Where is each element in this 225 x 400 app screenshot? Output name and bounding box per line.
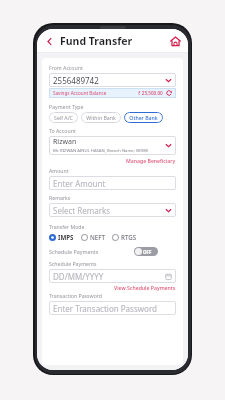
button[interactable]: Schedule Payments off: [134, 247, 158, 256]
staticText: Manage Beneficiary: [126, 157, 176, 164]
button[interactable]: Rizwan: [49, 136, 176, 155]
staticText: Savings Account Balance: [53, 90, 107, 96]
staticText: Other Bank: [129, 114, 158, 121]
staticText: Schedule Payments: [49, 260, 97, 267]
staticText: IMPS: [58, 233, 74, 241]
staticText: Fund Transfer: [60, 34, 133, 48]
button[interactable]: 2556489742: [49, 73, 176, 87]
button[interactable]: View Schedule Payments: [114, 284, 176, 291]
button[interactable]: Refresh balance: [166, 90, 172, 96]
staticText: ₹ 25,500.00: [138, 90, 163, 96]
button[interactable]: Other Bank: [124, 112, 163, 123]
staticText: Self A/C: [54, 114, 73, 121]
button[interactable]: Self A/C: [49, 112, 78, 123]
button[interactable]: Enter Amount: [49, 176, 176, 190]
staticText: Transfer Mode: [49, 223, 85, 230]
staticText: Within Bank: [86, 114, 116, 121]
staticText: Schedule Payments: [49, 248, 99, 255]
staticText: Remarks: [49, 194, 71, 201]
staticText: Mr. RIZWAN AINUL HASAN, Branch Name: 089…: [53, 148, 148, 154]
staticText: To Account: [49, 127, 76, 134]
button[interactable]: Home: [167, 33, 183, 49]
staticText: DD/MM/YYYY: [53, 271, 104, 282]
staticText: Select Remarks: [53, 205, 111, 216]
staticText: Transaction Password: [49, 292, 103, 299]
staticText: View Schedule Payments: [114, 284, 176, 291]
button[interactable]: DD/MM/YYYY: [49, 269, 176, 283]
staticText: RTGS: [121, 233, 137, 241]
staticText: NEFT: [90, 233, 105, 241]
button[interactable]: IMPS: [49, 233, 74, 241]
staticText: From Account: [49, 64, 83, 71]
button[interactable]: Manage Beneficiary: [126, 157, 176, 164]
staticText: Amount: [49, 167, 69, 174]
button[interactable]: Within Bank: [81, 112, 121, 123]
button[interactable]: Select Remarks: [49, 203, 176, 217]
button[interactable]: Back: [42, 34, 56, 48]
other: Pick date: [164, 272, 172, 280]
staticText: Enter Transaction Password: [53, 303, 157, 314]
staticText: Rizwan: [53, 137, 77, 147]
staticText: Enter Amount: [53, 178, 106, 189]
button[interactable]: NEFT: [81, 233, 105, 241]
staticText: Payment Type: [49, 103, 84, 110]
button[interactable]: Enter Transaction Password: [49, 301, 176, 315]
staticText: 2556489742: [53, 75, 99, 86]
staticText: OFF: [143, 249, 152, 255]
button[interactable]: RTGS: [112, 233, 137, 241]
